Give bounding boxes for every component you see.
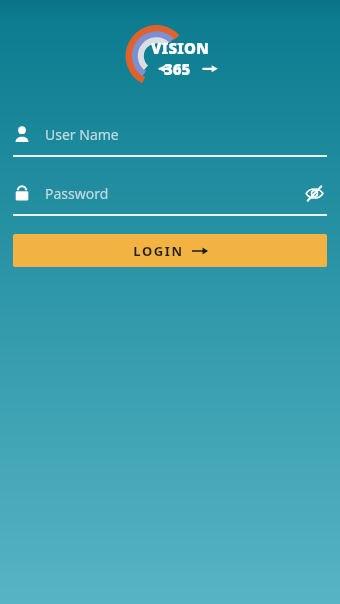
button[interactable]: LOGIN xyxy=(13,234,327,267)
staticText: User Name xyxy=(45,125,119,144)
button[interactable]: Password xyxy=(13,177,327,209)
button[interactable]: User Name xyxy=(13,118,327,150)
button[interactable]: Show password xyxy=(301,180,327,206)
staticText: LOGIN xyxy=(133,242,184,260)
staticText: Password xyxy=(45,184,301,203)
staticText: VISION xyxy=(151,38,209,58)
staticText: 365 xyxy=(164,59,191,79)
